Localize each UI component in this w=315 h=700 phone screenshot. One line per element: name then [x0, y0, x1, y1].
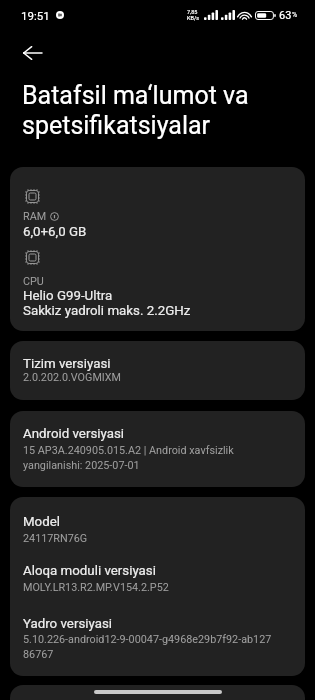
button[interactable]: Tizim versiyasi [10, 341, 305, 400]
staticText: 15 AP3A.240905.015.A2 | Android xavfsizl… [23, 444, 234, 471]
staticText: Helio G99-Ultra Sakkiz yadroli maks. 2.2… [23, 288, 191, 318]
staticText: Aloqa moduli versiyasi [23, 563, 156, 579]
staticText: 63 [279, 9, 292, 22]
staticText: % [292, 11, 298, 19]
button[interactable]: RAM [10, 167, 305, 331]
staticText: Model [23, 514, 60, 530]
button[interactable]: Android versiyasi [10, 411, 305, 487]
button[interactable]: Model [10, 497, 305, 676]
staticText: Tizim versiyasi [23, 356, 111, 372]
button[interactable] [10, 685, 305, 700]
staticText: 2.0.202.0.VOGMIXM [23, 371, 122, 384]
staticText: 6,0+6,0 GB [23, 224, 87, 240]
staticText: Android versiyasi [23, 426, 125, 442]
staticText: Yadro versiyasi [23, 616, 113, 632]
staticText: Batafsil ma‘lumot va spetsifikatsiyalar [22, 81, 249, 140]
button[interactable]: Back [14, 35, 50, 71]
staticText: 5.10.226-android12-9-00047-g4968e29b7f92… [23, 633, 272, 660]
staticText: MOLY.LR13.R2.MP.V154.2.P52 [23, 581, 169, 594]
staticText: 24117RN76G [23, 532, 88, 545]
staticText: 19:51 [21, 9, 50, 22]
staticText: KB/s [187, 15, 199, 21]
staticText: RAM [23, 210, 47, 223]
staticText: 7,85 [187, 9, 198, 15]
staticText: CPU [23, 275, 44, 288]
